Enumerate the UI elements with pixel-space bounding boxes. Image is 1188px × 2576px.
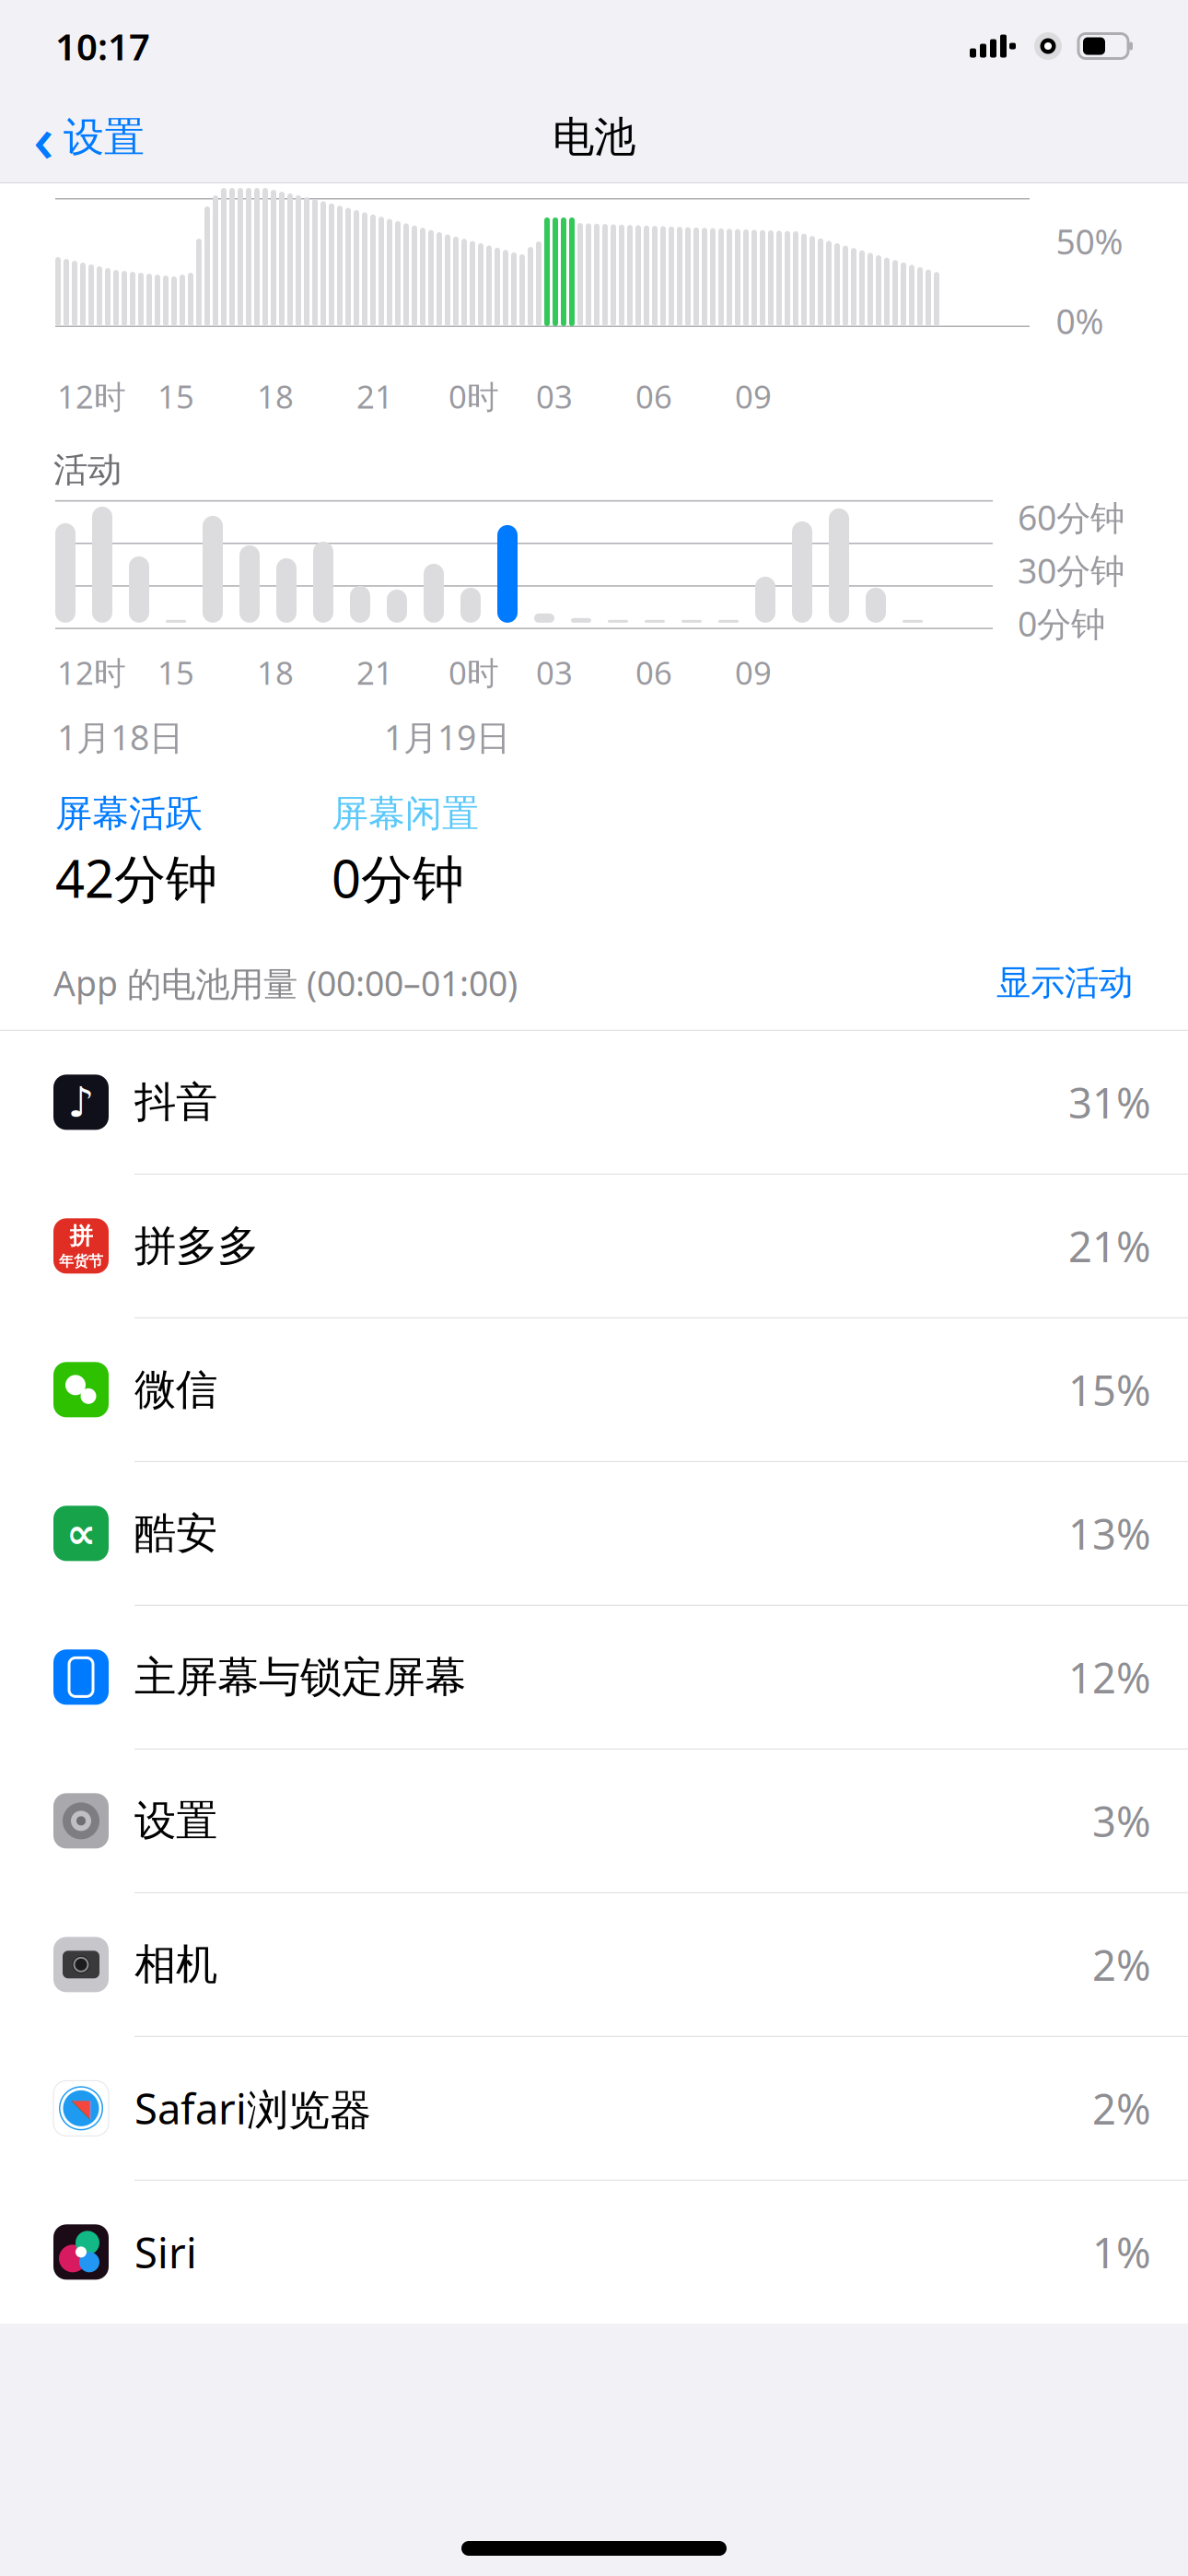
staticText: 30分钟 <box>1018 547 1124 593</box>
staticText: 15% <box>1068 1362 1151 1417</box>
staticText: 13% <box>1068 1506 1151 1561</box>
button[interactable]: 拼 <box>0 1175 1188 1318</box>
staticText: 60分钟 <box>1018 494 1124 540</box>
button[interactable]: 屏幕活跃 <box>55 791 332 912</box>
staticText: 18 <box>257 651 294 694</box>
staticText: 03 <box>536 375 573 417</box>
staticText: 1% <box>1092 2224 1151 2280</box>
staticText: 18 <box>257 375 294 417</box>
staticText: Siri <box>134 2224 197 2280</box>
staticText: 06 <box>635 375 672 417</box>
staticText: 0分钟 <box>332 844 464 912</box>
staticText: 0时 <box>448 651 499 694</box>
staticText: 酷安 <box>134 1508 217 1559</box>
staticText: 拼 <box>70 1222 93 1250</box>
staticText: 2% <box>1092 2081 1151 2136</box>
staticText: 09 <box>735 375 772 417</box>
staticText: 活动 <box>53 449 122 491</box>
button[interactable]: 相机 <box>0 1893 1188 2037</box>
staticText: 21% <box>1068 1218 1151 1274</box>
staticText: 年货节 <box>59 1252 103 1270</box>
staticText: 50% <box>1056 218 1123 264</box>
staticText: 微信 <box>134 1364 217 1415</box>
staticText: 1月18日 <box>57 714 183 760</box>
staticText: 0时 <box>448 375 499 417</box>
staticText: 设置 <box>134 1795 217 1847</box>
staticText: ♪ <box>68 1078 94 1126</box>
staticText: ◥ <box>71 2094 91 2122</box>
staticText: 主屏幕与锁定屏幕 <box>134 1651 466 1703</box>
staticText: 12时 <box>57 375 126 417</box>
staticText: ∝ <box>66 1510 96 1557</box>
button[interactable]: 显示活动 <box>996 956 1133 1010</box>
staticText: ‹ <box>33 95 54 180</box>
staticText: 09 <box>735 651 772 694</box>
button[interactable]: 主屏幕与锁定屏幕 <box>0 1606 1188 1749</box>
button[interactable]: 设置 <box>0 1749 1188 1893</box>
staticText: 21 <box>356 375 393 417</box>
button[interactable]: ◥ <box>0 2037 1188 2181</box>
staticText: 15 <box>157 651 194 694</box>
staticText: 设置 <box>64 112 145 162</box>
staticText: 03 <box>536 651 573 694</box>
staticText: Safari浏览器 <box>134 2080 371 2136</box>
staticText: 0分钟 <box>1018 600 1105 646</box>
staticText: 相机 <box>134 1939 217 1990</box>
button[interactable]: Siri <box>0 2181 1188 2323</box>
staticText: 15 <box>157 375 194 417</box>
staticText: 31% <box>1068 1075 1151 1130</box>
staticText: 3% <box>1092 1793 1151 1849</box>
button[interactable]: 微信 <box>0 1318 1188 1462</box>
staticText: 电池 <box>553 112 635 163</box>
staticText: 屏幕闲置 <box>332 791 479 836</box>
staticText: 2% <box>1092 1937 1151 1992</box>
button[interactable]: 屏幕闲置 <box>332 791 608 912</box>
staticText: 显示活动 <box>996 962 1133 1004</box>
staticText: 0% <box>1056 298 1104 344</box>
staticText: 1月19日 <box>384 714 510 760</box>
button[interactable]: ♪ <box>0 1031 1188 1175</box>
staticText: 06 <box>635 651 672 694</box>
staticText: 12% <box>1068 1649 1151 1705</box>
staticText: 10:17 <box>55 22 150 70</box>
staticText: 12时 <box>57 651 126 694</box>
button[interactable]: ‹ <box>0 88 145 187</box>
staticText: 21 <box>356 651 393 694</box>
staticText: 抖音 <box>134 1077 217 1128</box>
staticText: 42分钟 <box>55 844 217 912</box>
button[interactable]: ∝ <box>0 1462 1188 1606</box>
staticText: 拼多多 <box>134 1220 259 1272</box>
staticText: 屏幕活跃 <box>55 791 203 836</box>
staticText: App 的电池用量 (00:00–01:00) <box>53 960 518 1006</box>
